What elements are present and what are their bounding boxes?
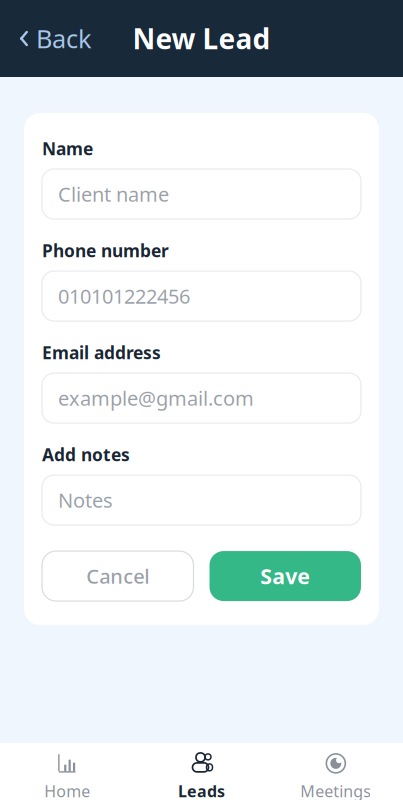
staticText: Back — [36, 22, 92, 55]
staticText: Save — [260, 562, 310, 590]
staticText: Home — [44, 780, 90, 800]
staticText: Leads — [178, 780, 225, 800]
staticText: Cancel — [86, 563, 149, 589]
staticText: 010101222456 — [58, 283, 190, 309]
staticText: New Lead — [132, 20, 270, 57]
button[interactable]: Meetings — [269, 751, 403, 800]
button[interactable]: Back — [0, 12, 110, 65]
staticText: example@gmail.com — [58, 385, 254, 411]
staticText: Phone number — [42, 239, 169, 262]
button[interactable]: Leads — [134, 751, 269, 800]
button[interactable]: Save — [209, 551, 361, 601]
button[interactable]: Cancel — [42, 551, 193, 601]
staticText: Meetings — [300, 780, 371, 800]
staticText: Email address — [42, 341, 161, 364]
staticText: Notes — [58, 487, 113, 513]
staticText: Name — [42, 137, 93, 160]
button[interactable]: Home — [0, 751, 134, 800]
staticText: Client name — [58, 181, 169, 207]
staticText: Add notes — [42, 443, 130, 466]
